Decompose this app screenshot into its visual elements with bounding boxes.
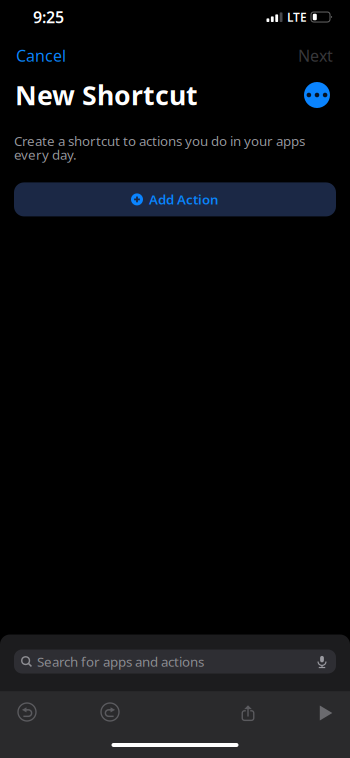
button[interactable]: Share [195, 695, 301, 721]
staticText: 9:25 [33, 6, 64, 28]
staticText: New Shortcut [15, 77, 198, 113]
button[interactable]: More options [302, 80, 332, 110]
staticText: LTE [287, 9, 307, 25]
staticText: Cancel [16, 45, 66, 66]
button[interactable]: Search for apps and actions [14, 634, 336, 691]
staticText: Add Action [149, 191, 219, 208]
button[interactable]: Undo [0, 695, 54, 721]
staticText: Search for apps and actions [37, 653, 204, 670]
button[interactable]: Run [301, 695, 350, 720]
button[interactable]: Cancel [15, 37, 67, 70]
button[interactable]: Redo [54, 695, 166, 721]
staticText: Create a shortcut to actions you do in y… [14, 132, 305, 163]
button[interactable]: Next [297, 37, 334, 70]
button[interactable]: Add Action [14, 182, 336, 216]
staticText: Next [298, 45, 333, 66]
